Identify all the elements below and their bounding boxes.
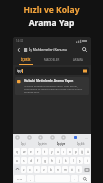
staticText: ğ — [81, 150, 83, 154]
button[interactable]: İşçilik — [71, 141, 90, 147]
staticText: ü — [87, 150, 89, 154]
button[interactable]: Klavye aracı 6 — [73, 135, 78, 140]
button[interactable]: Klavye aracı 4 — [50, 135, 55, 140]
button[interactable]: r — [35, 148, 41, 155]
button[interactable]: d — [28, 157, 34, 164]
button[interactable]: n — [55, 166, 61, 173]
button[interactable]: ü — [85, 148, 90, 155]
button[interactable]: Klavye aracı 7 — [84, 135, 89, 140]
button[interactable]: Klavye aracı 3 — [38, 135, 43, 140]
button[interactable]: o — [67, 148, 72, 155]
button[interactable]: MADDELER — [39, 55, 65, 65]
staticText: q — [16, 150, 18, 154]
button[interactable]: Klavye aracı 2 — [27, 135, 32, 140]
staticText: İşçiye — [57, 142, 66, 146]
staticText: İşçilik — [77, 142, 85, 146]
button[interactable]: ğ — [79, 148, 84, 155]
button[interactable]: İÇERİK — [13, 55, 39, 65]
staticText: k — [65, 159, 67, 163]
button[interactable]: Shift — [14, 166, 20, 173]
button[interactable]: m — [62, 166, 68, 173]
button[interactable]: v — [41, 166, 47, 173]
staticText: , — [30, 177, 31, 181]
staticText: e — [30, 150, 32, 154]
staticText: Hukuki Metinlerde Arama Yapın — [24, 79, 74, 83]
staticText: MADDELER — [44, 58, 60, 62]
staticText: Aramak istediğiniz kelimeyi yazın. Tüm k… — [24, 84, 87, 93]
staticText: ç — [78, 168, 80, 172]
button[interactable]: x — [27, 166, 33, 173]
button[interactable]: Ara — [80, 45, 89, 54]
button[interactable]: t — [42, 148, 48, 155]
staticText: w — [23, 150, 26, 154]
button[interactable]: İşçi — [14, 141, 33, 147]
staticText: ş — [79, 159, 81, 163]
staticText: İşçinin — [38, 142, 47, 146]
staticText: ö — [71, 168, 73, 172]
staticText: x — [29, 168, 31, 172]
button[interactable]: Ara — [79, 175, 90, 182]
button[interactable]: İşçinin — [33, 141, 52, 147]
button[interactable]: ş — [77, 157, 83, 164]
button[interactable]: e — [28, 148, 34, 155]
button[interactable]: b — [48, 166, 54, 173]
button[interactable]: ?123 — [14, 175, 26, 182]
button[interactable]: s — [21, 157, 27, 164]
button[interactable]: Klavye aracı 5 — [61, 135, 66, 140]
staticText: p — [75, 150, 77, 154]
button[interactable]: f — [35, 157, 41, 164]
button[interactable]: w — [21, 148, 27, 155]
button[interactable]: i — [84, 157, 90, 164]
staticText: m — [64, 168, 67, 172]
button[interactable]: g — [42, 157, 48, 164]
button[interactable]: İşçiye — [52, 141, 71, 147]
button[interactable]: , — [27, 175, 34, 182]
button[interactable]: Hukuki Metinlerde Arama Yapın — [15, 77, 89, 95]
staticText: d — [30, 159, 32, 163]
staticText: r — [37, 150, 39, 154]
staticText: Arama Yap — [0, 17, 103, 29]
staticText: j — [59, 159, 60, 163]
button[interactable]: İş Mahkemeleri Kanunu — [24, 47, 80, 52]
staticText: İÇERİK — [21, 58, 31, 62]
staticText: b — [50, 168, 52, 172]
button[interactable]: c — [34, 166, 40, 173]
staticText: z — [23, 168, 25, 172]
button[interactable]: l — [70, 157, 76, 164]
staticText: ARAMA — [73, 58, 83, 62]
button[interactable]: ç — [76, 166, 82, 173]
staticText: n — [57, 168, 59, 172]
staticText: o — [69, 150, 71, 154]
staticText: c — [36, 168, 38, 172]
button[interactable]: h — [49, 157, 55, 164]
staticText: 14:32 — [16, 39, 24, 43]
staticText: . — [74, 177, 75, 181]
button[interactable]: u — [55, 148, 60, 155]
button[interactable]: Klavye aracı 1 — [15, 135, 20, 140]
staticText: g — [44, 159, 46, 163]
staticText: ?123 — [17, 177, 23, 180]
button[interactable]: . — [71, 175, 78, 182]
button[interactable]: y — [49, 148, 54, 155]
button[interactable]: ı — [61, 148, 66, 155]
button[interactable]: k — [63, 157, 69, 164]
staticText: f — [37, 159, 39, 163]
staticText: v — [43, 168, 45, 172]
button[interactable]: Geri — [15, 46, 23, 54]
button[interactable]: a — [14, 157, 20, 164]
button[interactable]: z — [21, 166, 26, 173]
staticText: l — [73, 159, 74, 163]
button[interactable]: j — [56, 157, 62, 164]
staticText: İş Mahkemeleri Kanunu — [29, 47, 67, 52]
button[interactable]: p — [73, 148, 78, 155]
staticText: a — [16, 159, 18, 163]
button[interactable]: q — [14, 148, 20, 155]
staticText: i — [87, 159, 88, 163]
button[interactable]: ö — [69, 166, 75, 173]
button[interactable]: ARAMA — [65, 55, 91, 65]
button[interactable]: işçi — [15, 67, 89, 75]
staticText: y — [51, 150, 53, 154]
staticText: ⋯ — [85, 136, 88, 139]
button[interactable]: Sil — [83, 166, 90, 173]
